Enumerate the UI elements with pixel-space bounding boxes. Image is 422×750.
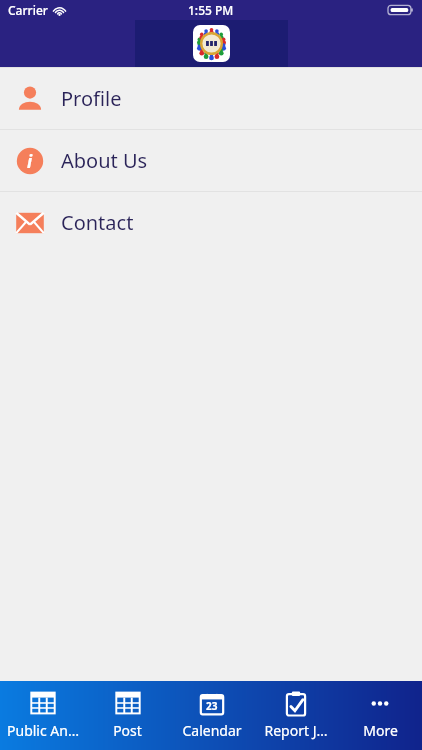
button[interactable]: Public Announcements [0,681,85,750]
button[interactable]: UAW logo [193,25,230,62]
button[interactable]: Post [85,681,170,750]
staticText: Public An… [7,721,79,740]
staticText: More [363,721,398,740]
staticText: Carrier [8,2,48,18]
staticText: Post [113,721,142,740]
staticText: 23 [206,699,218,713]
button[interactable]: Contact [0,192,422,253]
staticText: Calendar [182,721,242,740]
button[interactable]: i [0,130,422,191]
staticText: Report J… [264,721,328,740]
button[interactable]: Report Job [254,681,338,750]
staticText: Profile [61,85,122,112]
button[interactable]: More [338,681,422,750]
staticText: Contact [61,209,134,236]
button[interactable]: Calendar [170,681,254,750]
staticText: 1:55 PM [188,2,234,18]
staticText: About Us [61,147,148,174]
button[interactable]: Profile [0,68,422,129]
staticText: i [27,150,33,173]
